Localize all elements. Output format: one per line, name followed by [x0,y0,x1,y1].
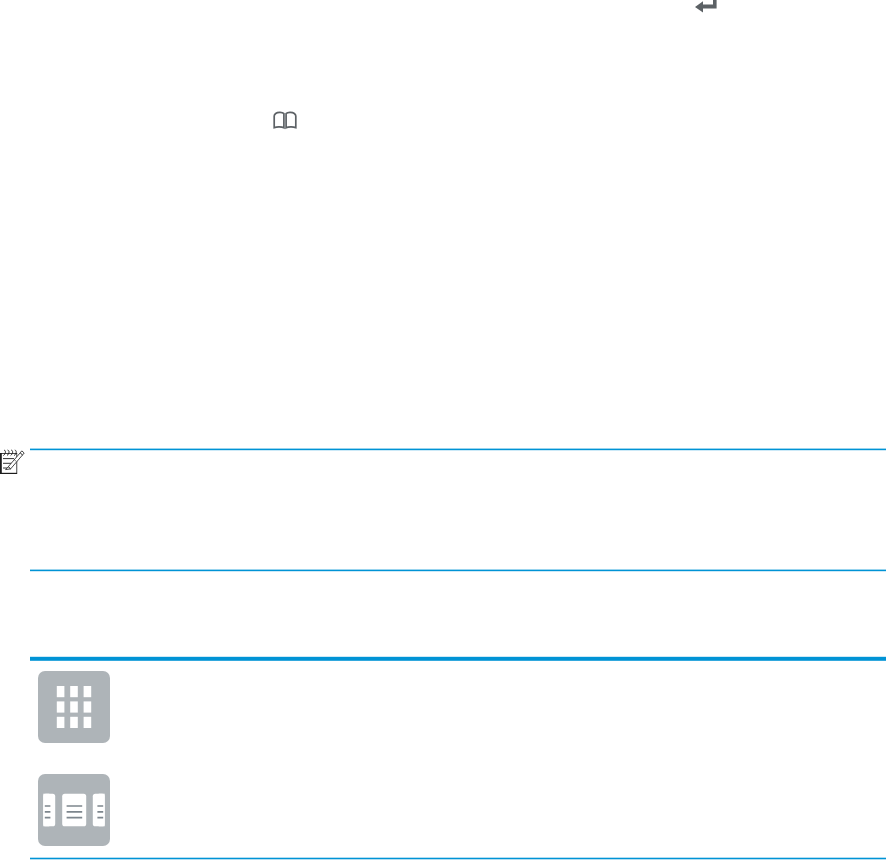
button[interactable]: Book [273,109,297,133]
button[interactable]: Apps [38,671,110,743]
button[interactable]: Edit note [0,446,26,472]
button[interactable]: Return [694,0,718,12]
button[interactable]: Carousel view [38,774,110,846]
